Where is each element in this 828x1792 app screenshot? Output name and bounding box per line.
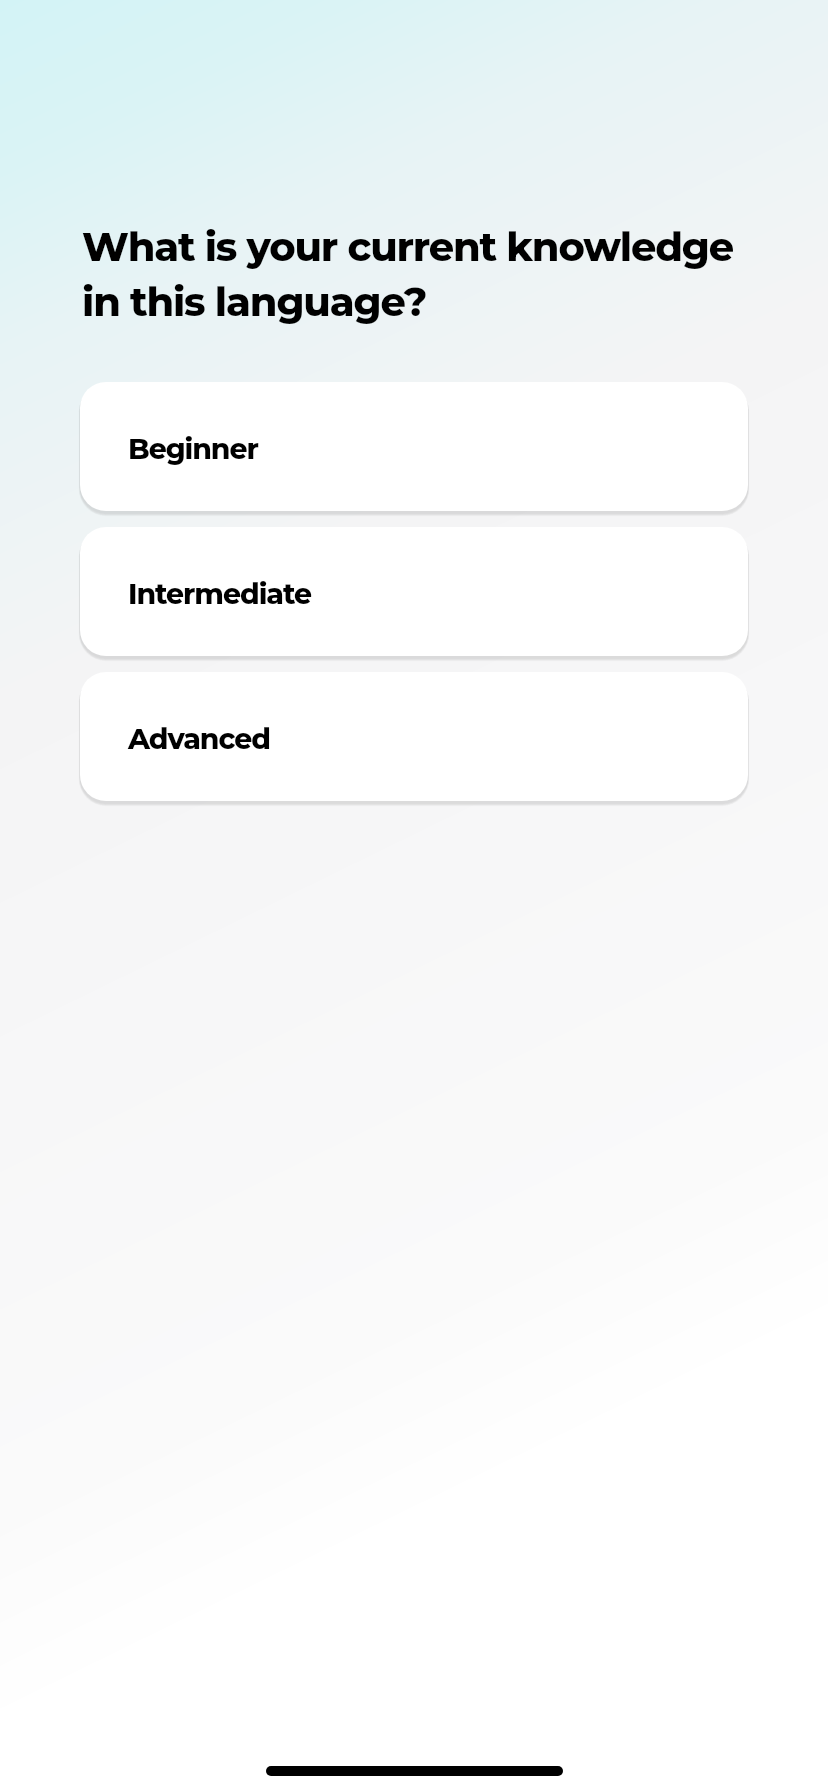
button[interactable]: Beginner bbox=[80, 382, 748, 511]
staticText: Intermediate bbox=[128, 577, 311, 611]
staticText: Advanced bbox=[128, 722, 270, 756]
staticText: What is your current knowledge in this l… bbox=[82, 217, 734, 327]
button[interactable]: Intermediate bbox=[80, 527, 748, 656]
other: Home indicator bbox=[266, 1766, 563, 1776]
button[interactable]: Advanced bbox=[80, 672, 748, 801]
staticText: Beginner bbox=[128, 432, 258, 466]
